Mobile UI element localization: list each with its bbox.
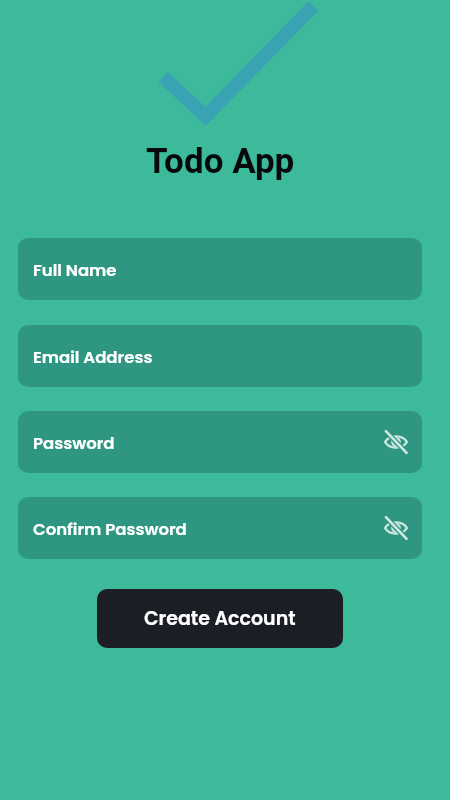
staticText: Password (33, 432, 115, 455)
button[interactable]: Show password (382, 514, 410, 542)
button[interactable]: Password (18, 411, 422, 473)
staticText: Todo App (146, 141, 295, 182)
button[interactable]: Show password (382, 428, 410, 456)
staticText: Create Account (144, 605, 296, 632)
staticText: Full Name (33, 259, 117, 282)
staticText: Email Address (33, 346, 153, 369)
button[interactable]: Email Address (18, 325, 422, 387)
button[interactable]: Create Account (97, 589, 343, 648)
staticText: Confirm Password (33, 518, 187, 541)
button[interactable]: Confirm Password (18, 497, 422, 559)
button[interactable]: Full Name (18, 238, 422, 300)
